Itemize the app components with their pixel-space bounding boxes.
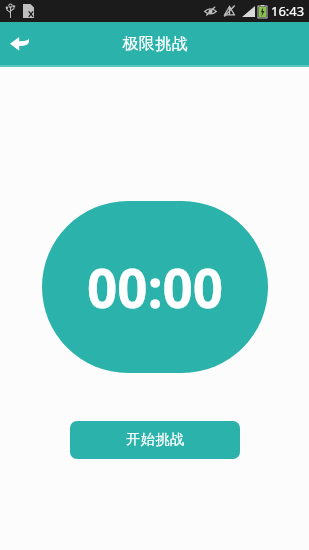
staticText: 开始挑战: [126, 431, 184, 449]
button[interactable]: 00:00: [42, 201, 268, 373]
staticText: 16:43: [271, 2, 305, 20]
button[interactable]: 开始挑战: [70, 421, 240, 459]
staticText: 00:00: [87, 251, 224, 323]
staticText: 极限挑战: [122, 34, 188, 54]
button[interactable]: Back: [0, 24, 40, 64]
